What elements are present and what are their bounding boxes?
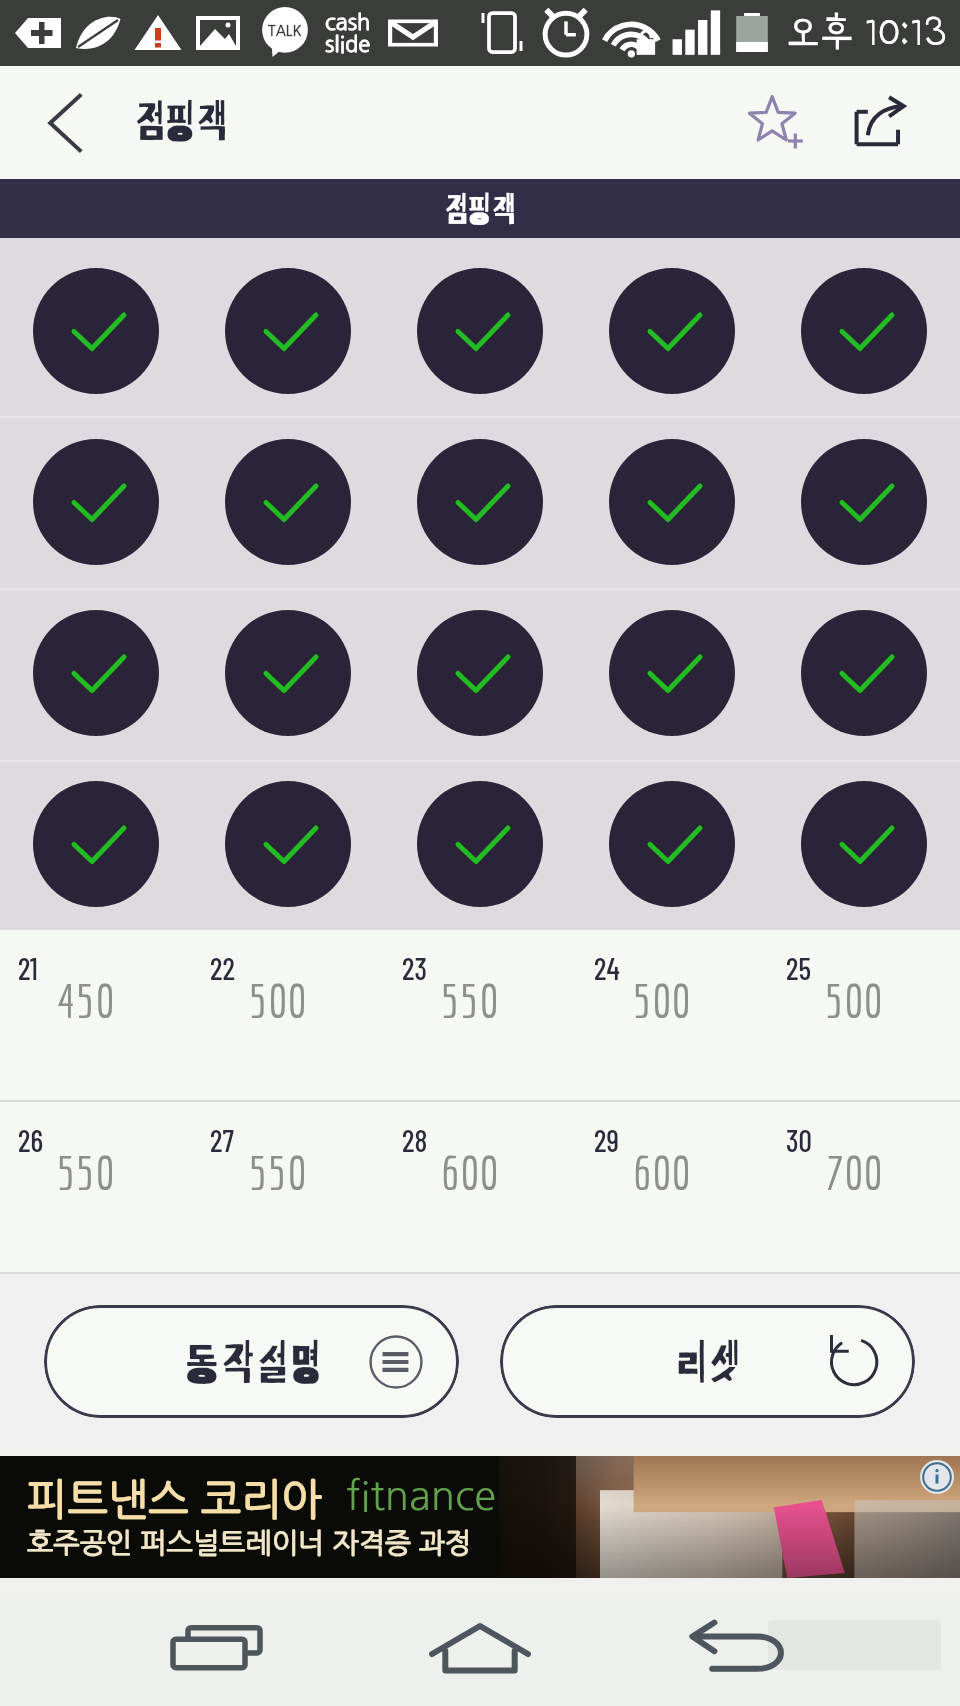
staticText: 점핑잭 [134, 99, 229, 146]
staticText: 500 [633, 973, 691, 1027]
staticText: 호주공인 퍼스널트레이너 자격증 과정 [27, 1529, 472, 1557]
button[interactable]: 26 [0, 1102, 192, 1272]
staticText: 550 [57, 1145, 115, 1199]
button[interactable]: Set completed [400, 253, 560, 409]
staticText: slide [325, 33, 371, 55]
button[interactable]: Share [814, 66, 944, 179]
staticText: fitnance [346, 1476, 497, 1516]
button[interactable]: Exercise description [44, 1305, 459, 1418]
button[interactable]: 29 [576, 1102, 768, 1272]
button[interactable]: Set completed [16, 595, 176, 751]
staticText: 500 [825, 973, 883, 1027]
button[interactable]: Set completed [400, 424, 560, 580]
staticText: 29 [594, 1122, 619, 1158]
staticText: 22 [210, 950, 235, 986]
button[interactable]: 21 [0, 930, 192, 1100]
button[interactable]: Set completed [400, 595, 560, 751]
button[interactable]: Set completed [208, 595, 368, 751]
button[interactable]: Set completed [784, 424, 944, 580]
staticText: 25 [786, 950, 812, 986]
button[interactable]: Favorite [717, 66, 837, 179]
staticText: 27 [210, 1122, 234, 1158]
button[interactable]: Set completed [784, 253, 944, 409]
staticText: 26 [18, 1122, 44, 1158]
button[interactable]: Set completed [592, 253, 752, 409]
button[interactable]: 23 [384, 930, 576, 1100]
button[interactable]: Set completed [16, 253, 176, 409]
button[interactable]: Set completed [784, 595, 944, 751]
button[interactable]: 25 [768, 930, 960, 1100]
button[interactable]: Set completed [208, 253, 368, 409]
button[interactable]: Reset [500, 1305, 915, 1418]
staticText: 21 [18, 950, 38, 986]
button[interactable]: 22 [192, 930, 384, 1100]
staticText: 500 [249, 973, 307, 1027]
button[interactable]: Advertisement [0, 1456, 960, 1578]
button[interactable]: 28 [384, 1102, 576, 1272]
staticText: 24 [594, 950, 620, 986]
button[interactable]: Recents [60, 1596, 380, 1706]
staticText: 23 [402, 950, 427, 986]
button[interactable]: Ad info [920, 1460, 954, 1494]
button[interactable]: Set completed [592, 424, 752, 580]
staticText: cash [325, 11, 371, 33]
staticText: 점핑잭 [444, 192, 517, 228]
staticText: 동작설명 [184, 1338, 320, 1388]
staticText: TALK [268, 24, 302, 38]
button[interactable]: Set completed [400, 766, 560, 922]
button[interactable]: Set completed [208, 424, 368, 580]
staticText: 600 [441, 1145, 499, 1199]
button[interactable]: Set completed [208, 766, 368, 922]
staticText: 550 [249, 1145, 307, 1199]
button[interactable]: 30 [768, 1102, 960, 1272]
button[interactable]: Back [0, 66, 130, 179]
button[interactable]: Set completed [784, 766, 944, 922]
button[interactable]: 27 [192, 1102, 384, 1272]
button[interactable]: Set completed [592, 595, 752, 751]
staticText: 피트낸스 코리아 [27, 1478, 322, 1521]
staticText: 오후 10:13 [786, 11, 946, 53]
staticText: 리셋 [674, 1338, 742, 1388]
button[interactable]: Set completed [592, 766, 752, 922]
button[interactable]: Set completed [16, 424, 176, 580]
button[interactable]: Set completed [16, 766, 176, 922]
staticText: 550 [441, 973, 499, 1027]
staticText: 450 [57, 973, 115, 1027]
staticText: 28 [402, 1122, 428, 1158]
button[interactable]: Back [583, 1596, 903, 1706]
staticText: 30 [786, 1122, 812, 1158]
staticText: 600 [633, 1145, 691, 1199]
button[interactable]: 24 [576, 930, 768, 1100]
staticText: 700 [825, 1145, 883, 1199]
button[interactable]: Home [320, 1596, 640, 1706]
